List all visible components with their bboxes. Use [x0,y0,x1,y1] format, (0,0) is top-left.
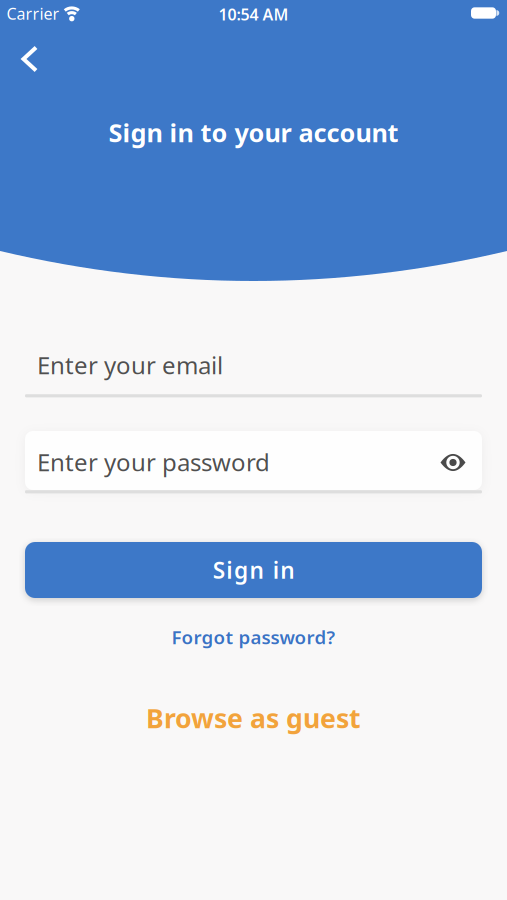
staticText: Enter your email [37,349,223,381]
button[interactable] [8,39,52,79]
staticText: Sign in [213,555,294,585]
button[interactable]: Forgot password? [171,625,335,649]
button[interactable]: Sign in [25,542,482,598]
button[interactable]: Browse as guest [146,700,361,736]
staticText: Enter your password [37,446,270,478]
staticText: Forgot password? [171,625,335,649]
staticText: Browse as guest [146,700,361,736]
button[interactable]: Enter your email [25,336,482,394]
button[interactable]: Enter your password [25,431,482,490]
staticText: 10:54 AM [218,4,288,25]
staticText: Carrier [6,3,59,24]
staticText: Sign in to your account [108,116,398,149]
